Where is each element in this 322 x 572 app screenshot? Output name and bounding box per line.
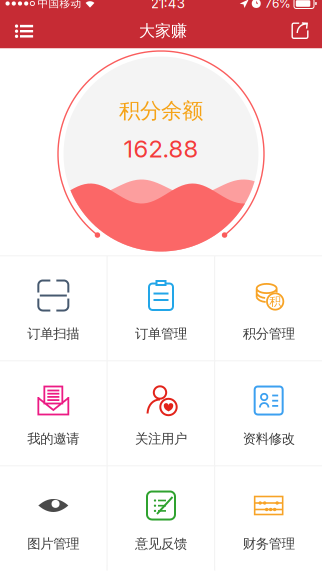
staticText: 图片管理 bbox=[27, 535, 79, 552]
button[interactable]: 订单管理 bbox=[108, 256, 214, 360]
staticText: 21:43 bbox=[151, 0, 185, 12]
button[interactable]: Menu bbox=[0, 13, 48, 49]
staticText: 162.88 bbox=[123, 134, 198, 163]
staticText: 资料修改 bbox=[243, 430, 295, 447]
staticText: 76% bbox=[265, 0, 291, 11]
staticText: 关注用户 bbox=[135, 430, 187, 447]
staticText: 订单管理 bbox=[135, 325, 187, 342]
staticText: 我的邀请 bbox=[27, 430, 79, 447]
staticText: 中国移动 bbox=[37, 0, 81, 10]
button[interactable]: 财务管理 bbox=[215, 466, 322, 570]
staticText: 财务管理 bbox=[243, 535, 295, 552]
button[interactable]: 我的邀请 bbox=[0, 361, 107, 465]
button[interactable]: 图片管理 bbox=[0, 466, 107, 570]
staticText: 积分管理 bbox=[243, 325, 295, 342]
staticText: 订单扫描 bbox=[27, 325, 79, 342]
staticText: 积 bbox=[269, 294, 281, 309]
button[interactable]: 意见反馈 bbox=[108, 466, 214, 570]
button[interactable]: 订单扫描 bbox=[0, 256, 107, 360]
button[interactable]: 积 bbox=[215, 256, 322, 360]
button[interactable]: Share bbox=[278, 13, 322, 49]
staticText: 大家赚 bbox=[139, 21, 187, 41]
staticText: 意见反馈 bbox=[135, 535, 187, 552]
button[interactable]: 关注用户 bbox=[108, 361, 214, 465]
staticText: 积分余额 bbox=[119, 97, 203, 124]
button[interactable]: 资料修改 bbox=[215, 361, 322, 465]
